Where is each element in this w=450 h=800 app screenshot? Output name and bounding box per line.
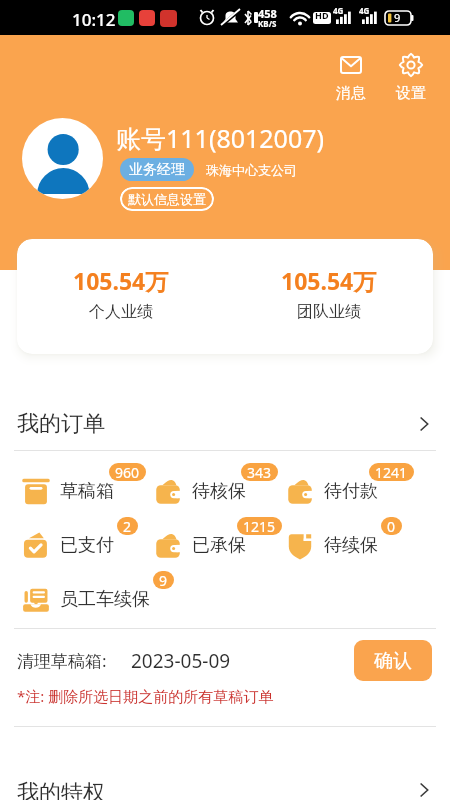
staticText: 0 [387,517,396,535]
staticText: 待付款 [324,480,378,503]
staticText: 960 [115,463,140,481]
staticText: 9 [159,571,168,589]
staticText: 1241 [375,463,408,481]
staticText: 待核保 [192,480,246,503]
staticText: 设置 [396,84,426,103]
staticText: 清理草稿箱: [17,649,107,672]
staticText: 员工车续保 [60,588,150,611]
staticText: 105.54万 [73,265,169,296]
button[interactable]: 已承保 [154,531,246,560]
button[interactable]: 已支付 [22,531,114,560]
button[interactable]: 105.54万 [225,265,433,322]
staticText: 10:12 [72,8,116,31]
button[interactable]: 待续保 [286,531,378,560]
staticText: 9 [394,10,401,25]
staticText: 团队业绩 [297,302,361,322]
button[interactable]: 消息 [334,54,368,103]
staticText: 草稿箱 [60,480,114,503]
staticText: 消息 [336,84,366,103]
staticText: 业务经理 [129,161,185,179]
staticText: 我的特权 [17,779,105,800]
button[interactable]: 默认信息设置 [120,187,214,211]
staticText: 珠海中心支公司 [206,162,297,178]
staticText: 账号111(8012007) [116,121,325,155]
staticText: 已承保 [192,534,246,557]
staticText: HD [315,9,329,21]
button[interactable]: 设置 [394,54,428,103]
button[interactable]: 我的特权 [0,779,450,800]
staticText: 2 [123,517,132,535]
button[interactable]: 确认 [354,640,432,681]
button[interactable]: 我的订单 [0,410,450,438]
staticText: 4G [333,5,344,16]
button[interactable]: 员工车续保 [22,585,150,614]
staticText: 105.54万 [281,265,377,296]
button[interactable]: 草稿箱 [22,477,114,506]
staticText: 1215 [243,517,276,535]
button[interactable]: 105.54万 [17,265,225,322]
staticText: 确认 [374,649,412,673]
button[interactable]: 业务经理 [120,158,194,181]
staticText: *注: 删除所选日期之前的所有草稿订单 [17,686,274,706]
staticText: KB/S [258,18,277,29]
staticText: 2023-05-09 [131,648,231,674]
staticText: 458 [258,6,277,21]
button[interactable]: 头像 [22,118,103,199]
button[interactable]: 待付款 [286,477,378,506]
staticText: 我的订单 [17,410,105,438]
staticText: 343 [247,463,272,481]
staticText: 4G [359,5,370,16]
staticText: 待续保 [324,534,378,557]
button[interactable]: 待核保 [154,477,246,506]
staticText: 默认信息设置 [128,191,206,207]
staticText: 个人业绩 [89,302,153,322]
staticText: 已支付 [60,534,114,557]
